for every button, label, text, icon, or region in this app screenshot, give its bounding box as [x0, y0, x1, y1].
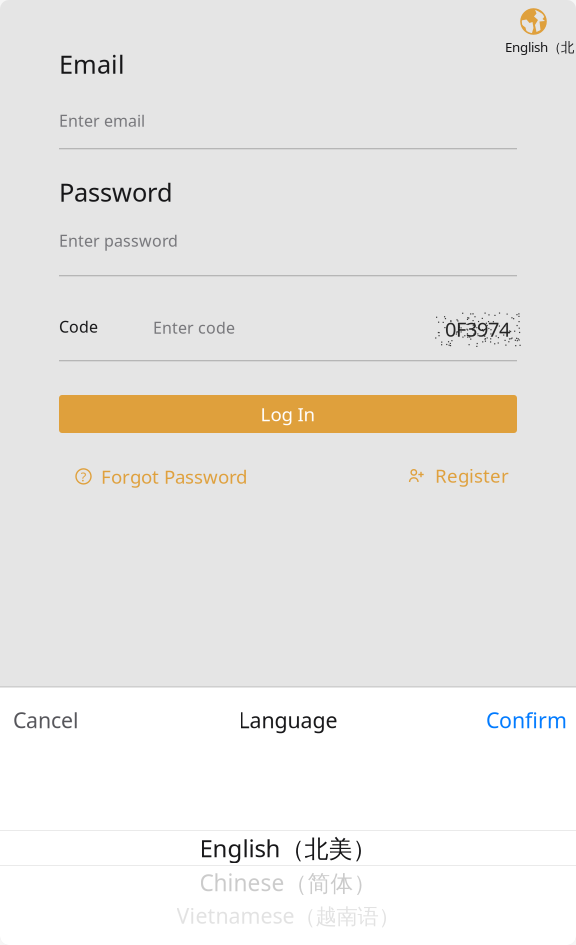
button[interactable]: English（北美）	[0, 831, 576, 865]
staticText: 0F3974	[445, 316, 510, 342]
button[interactable]: Chinese（简体）	[0, 866, 576, 899]
button[interactable]: Register	[409, 463, 509, 488]
staticText: Chinese（简体）	[199, 867, 376, 898]
staticText: Enter email	[59, 110, 145, 131]
staticText: Vietnamese（越南语）	[176, 901, 399, 930]
button[interactable]: Vietnamese（越南语）	[0, 899, 576, 932]
staticText: Enter password	[59, 230, 178, 251]
staticText: English（北美）	[199, 832, 376, 864]
staticText: Forgot Password	[101, 464, 247, 489]
staticText: Register	[435, 463, 509, 488]
staticText: Password	[59, 175, 173, 209]
staticText: Code	[59, 316, 98, 337]
button[interactable]: Refresh captcha	[435, 312, 520, 346]
staticText: Cancel	[13, 706, 79, 734]
button[interactable]: Language: English	[505, 38, 574, 56]
button[interactable]: Confirm	[486, 695, 576, 745]
staticText: ?	[80, 467, 86, 485]
button[interactable]: Log In	[59, 395, 517, 433]
button[interactable]: Cancel	[0, 695, 79, 745]
staticText: Confirm	[486, 706, 567, 734]
staticText: Email	[59, 47, 125, 81]
button[interactable]: ?	[76, 464, 247, 489]
staticText: English（北	[505, 38, 574, 56]
staticText: Enter code	[153, 317, 235, 338]
staticText: Log In	[260, 402, 315, 426]
staticText: Language	[238, 706, 337, 734]
